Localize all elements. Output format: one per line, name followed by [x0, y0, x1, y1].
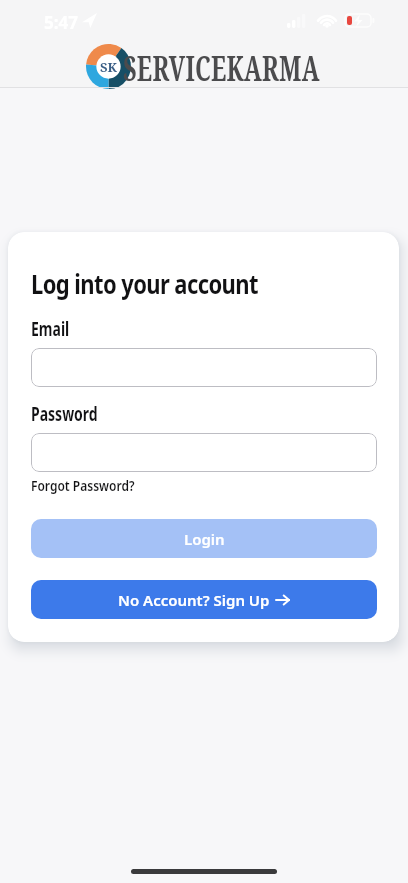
staticText: No Account? Sign Up: [118, 590, 270, 610]
staticText: 5:47: [44, 11, 78, 34]
button[interactable]: [31, 348, 377, 387]
staticText: Email: [31, 316, 70, 341]
staticText: Login: [184, 529, 225, 549]
button[interactable]: Login: [31, 519, 377, 558]
button[interactable]: Forgot Password?: [31, 475, 135, 495]
staticText: SERVICEKARMA: [123, 43, 320, 91]
button[interactable]: No Account? Sign Up: [31, 580, 377, 619]
staticText: Password: [31, 401, 98, 426]
staticText: SK: [100, 58, 118, 76]
staticText: Log into your account: [31, 264, 258, 302]
button[interactable]: [31, 433, 377, 472]
